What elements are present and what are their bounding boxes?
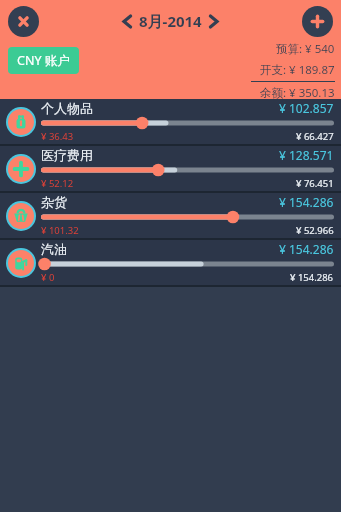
staticText: ¥ 52.12 [41,177,74,190]
staticText: 8月-2014 [139,11,202,31]
staticText: ¥ 36.43 [41,130,74,143]
button[interactable]: 医疗费用 [0,146,341,191]
button[interactable]: CNY 账户 [8,47,79,74]
staticText: ¥ 154.286 [279,241,334,257]
staticText: 汽油 [41,241,67,257]
staticText: ¥ 154.286 [279,194,334,210]
staticText: 个人物品 [41,100,93,116]
button[interactable]: Add [302,6,333,37]
staticText: ¥ 0 [41,271,55,284]
staticText: ¥ 102.857 [279,100,334,116]
staticText: ¥ 128.571 [279,147,334,163]
staticText: 开支: ¥ 189.87 [260,62,335,78]
staticText: 余额: ¥ 350.13 [260,85,335,101]
staticText: CNY 账户 [17,52,70,69]
staticText: ¥ 52.966 [296,224,334,237]
button[interactable]: 8月-2014 [123,11,218,31]
button[interactable]: 汽油 [0,240,341,285]
staticText: ¥ 66.427 [296,130,334,143]
button[interactable]: 个人物品 [0,99,341,144]
staticText: 医疗费用 [41,147,93,163]
staticText: ¥ 76.451 [296,177,334,190]
staticText: 杂货 [41,194,67,210]
staticText: ¥ 154.286 [290,271,334,284]
button[interactable]: 杂货 [0,193,341,238]
button[interactable]: Close [8,6,39,37]
staticText: 预算: ¥ 540 [276,41,335,57]
staticText: ¥ 101.32 [41,224,79,237]
